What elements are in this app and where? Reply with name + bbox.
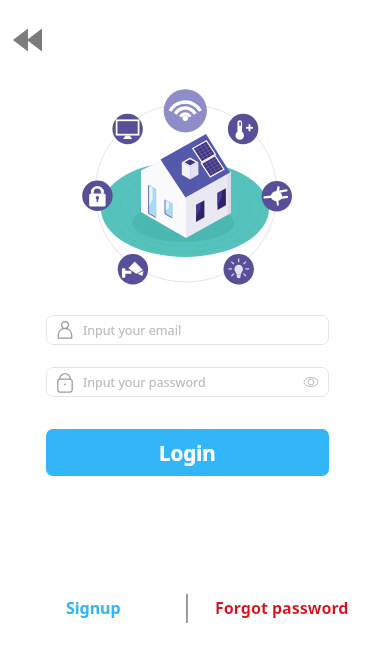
button[interactable]: Signup [0,592,186,624]
staticText: Input your password [83,374,206,391]
button[interactable]: Input your password [46,367,329,397]
staticText: Forgot password [215,597,349,619]
staticText: Signup [66,597,121,619]
staticText: Input your email [83,322,182,339]
button[interactable]: Input your email [46,315,329,345]
staticText: Login [159,439,216,467]
button[interactable]: Forgot password [188,592,375,624]
button[interactable]: Login [46,429,329,476]
button[interactable]: Back [6,23,50,57]
